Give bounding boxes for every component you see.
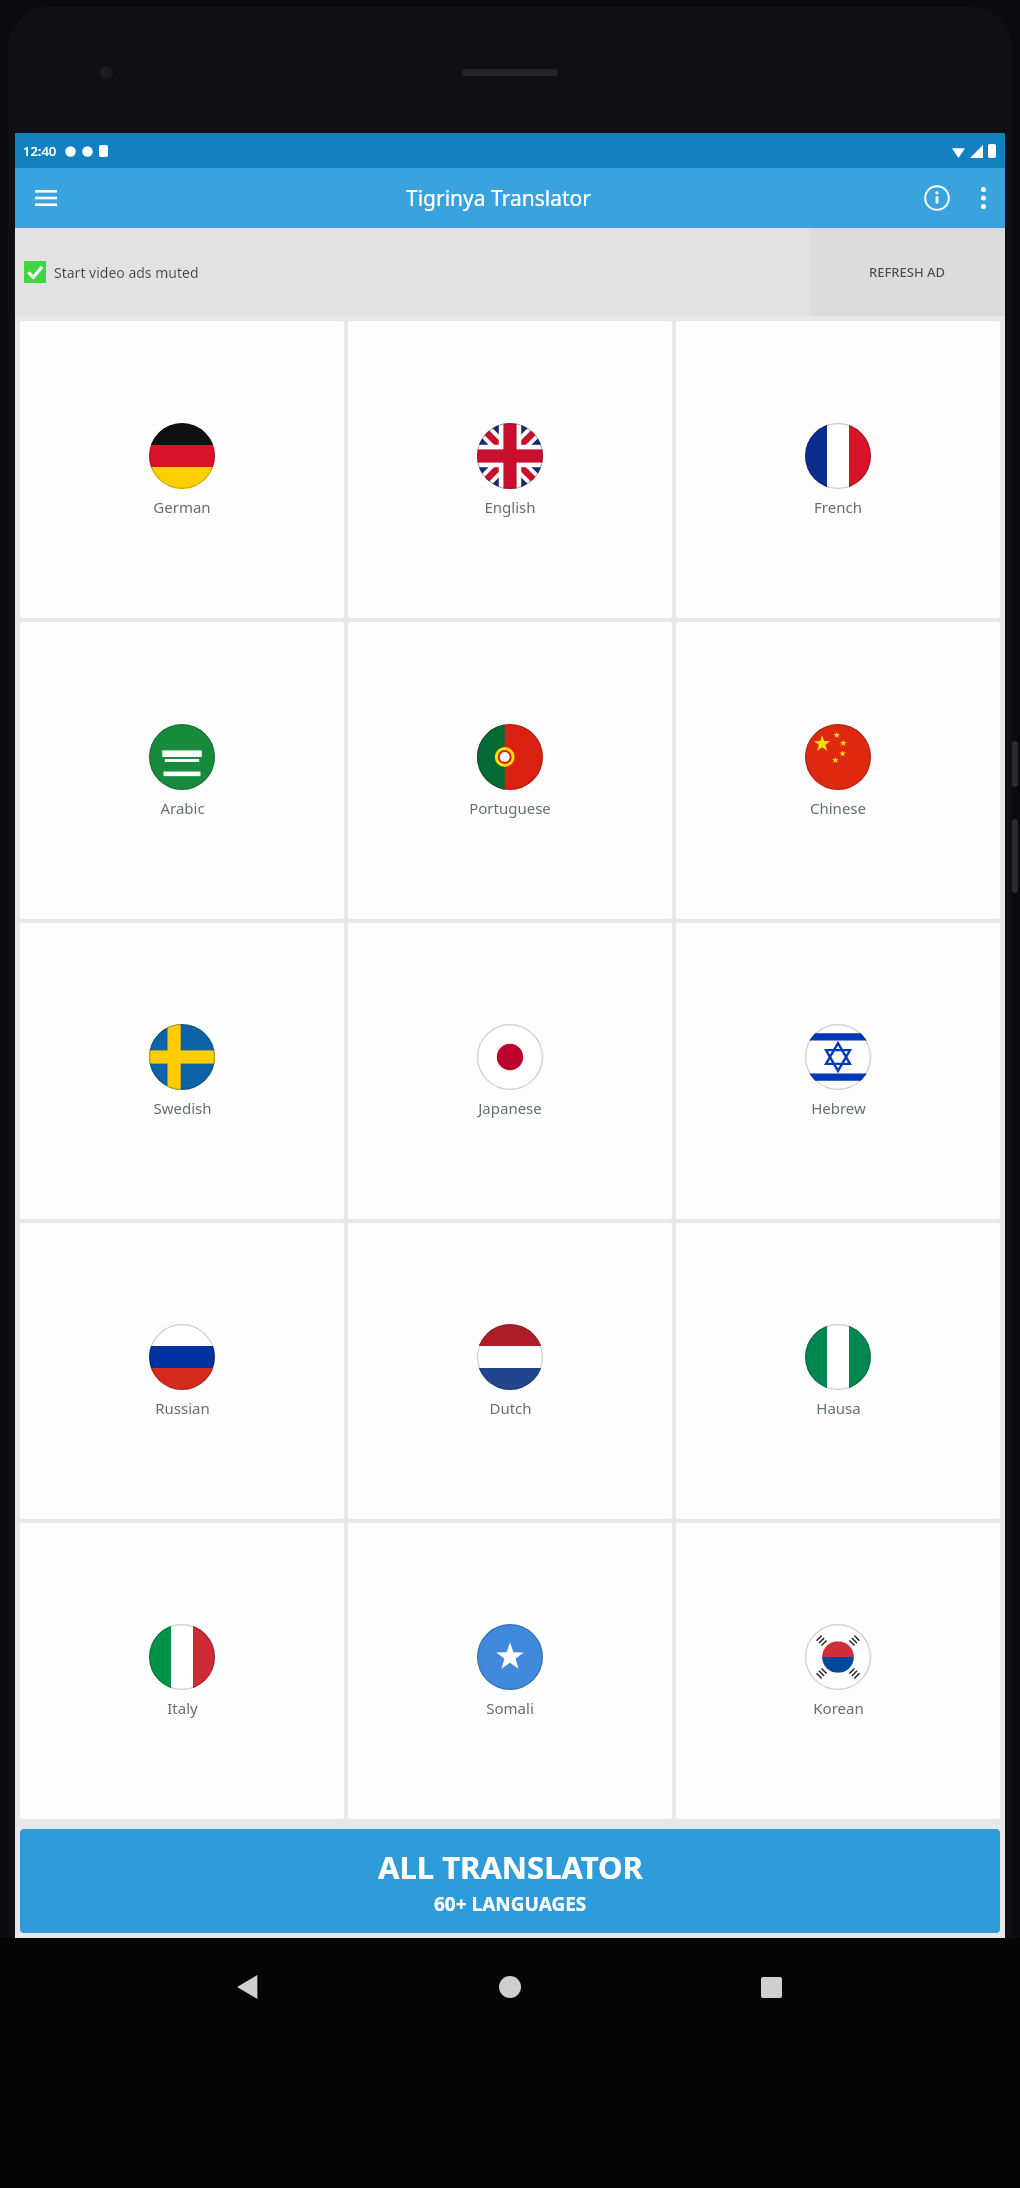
- button[interactable]: Hebrew: [676, 923, 1000, 1219]
- staticText: Hausa: [816, 1398, 861, 1418]
- staticText: Japanese: [478, 1098, 542, 1118]
- button[interactable]: Arabic: [20, 622, 344, 919]
- button[interactable]: Open navigation menu: [23, 175, 69, 221]
- staticText: ALL TRANSLATOR: [378, 1846, 643, 1888]
- button[interactable]: REFRESH AD: [810, 228, 1005, 316]
- button[interactable]: French: [676, 321, 1000, 618]
- button[interactable]: More options: [961, 176, 1005, 220]
- button[interactable]: Korean: [676, 1523, 1000, 1819]
- staticText: Tigrinya Translator: [406, 184, 591, 213]
- button[interactable]: Home: [483, 1960, 537, 2014]
- staticText: Italy: [167, 1698, 198, 1718]
- staticText: Hebrew: [811, 1098, 866, 1118]
- button[interactable]: ALL TRANSLATOR: [20, 1829, 1000, 1933]
- staticText: Portuguese: [469, 798, 551, 818]
- staticText: REFRESH AD: [869, 263, 946, 281]
- button[interactable]: Back: [222, 1960, 276, 2014]
- button[interactable]: Recent apps: [744, 1960, 798, 2014]
- button[interactable]: Japanese: [348, 923, 672, 1219]
- button[interactable]: English: [348, 321, 672, 618]
- staticText: Korean: [813, 1698, 864, 1718]
- button[interactable]: Swedish: [20, 923, 344, 1219]
- button[interactable]: Somali: [348, 1523, 672, 1819]
- staticText: Start video ads muted: [54, 263, 199, 282]
- staticText: English: [484, 497, 536, 517]
- staticText: Arabic: [160, 798, 205, 818]
- button[interactable]: Info: [913, 174, 961, 222]
- staticText: Chinese: [810, 798, 866, 818]
- button[interactable]: Dutch: [348, 1223, 672, 1519]
- button[interactable]: German: [20, 321, 344, 618]
- button[interactable]: Start video ads muted: [24, 261, 199, 283]
- button[interactable]: Chinese: [676, 622, 1000, 919]
- staticText: 12:40: [23, 142, 57, 160]
- button[interactable]: Russian: [20, 1223, 344, 1519]
- staticText: Russian: [155, 1398, 210, 1418]
- staticText: Dutch: [489, 1398, 532, 1418]
- button[interactable]: Portuguese: [348, 622, 672, 919]
- staticText: German: [153, 497, 211, 517]
- staticText: French: [814, 497, 862, 517]
- button[interactable]: Italy: [20, 1523, 344, 1819]
- staticText: Swedish: [153, 1098, 212, 1118]
- button[interactable]: Hausa: [676, 1223, 1000, 1519]
- staticText: 60+ LANGUAGES: [434, 1891, 587, 1917]
- staticText: Somali: [486, 1698, 534, 1718]
